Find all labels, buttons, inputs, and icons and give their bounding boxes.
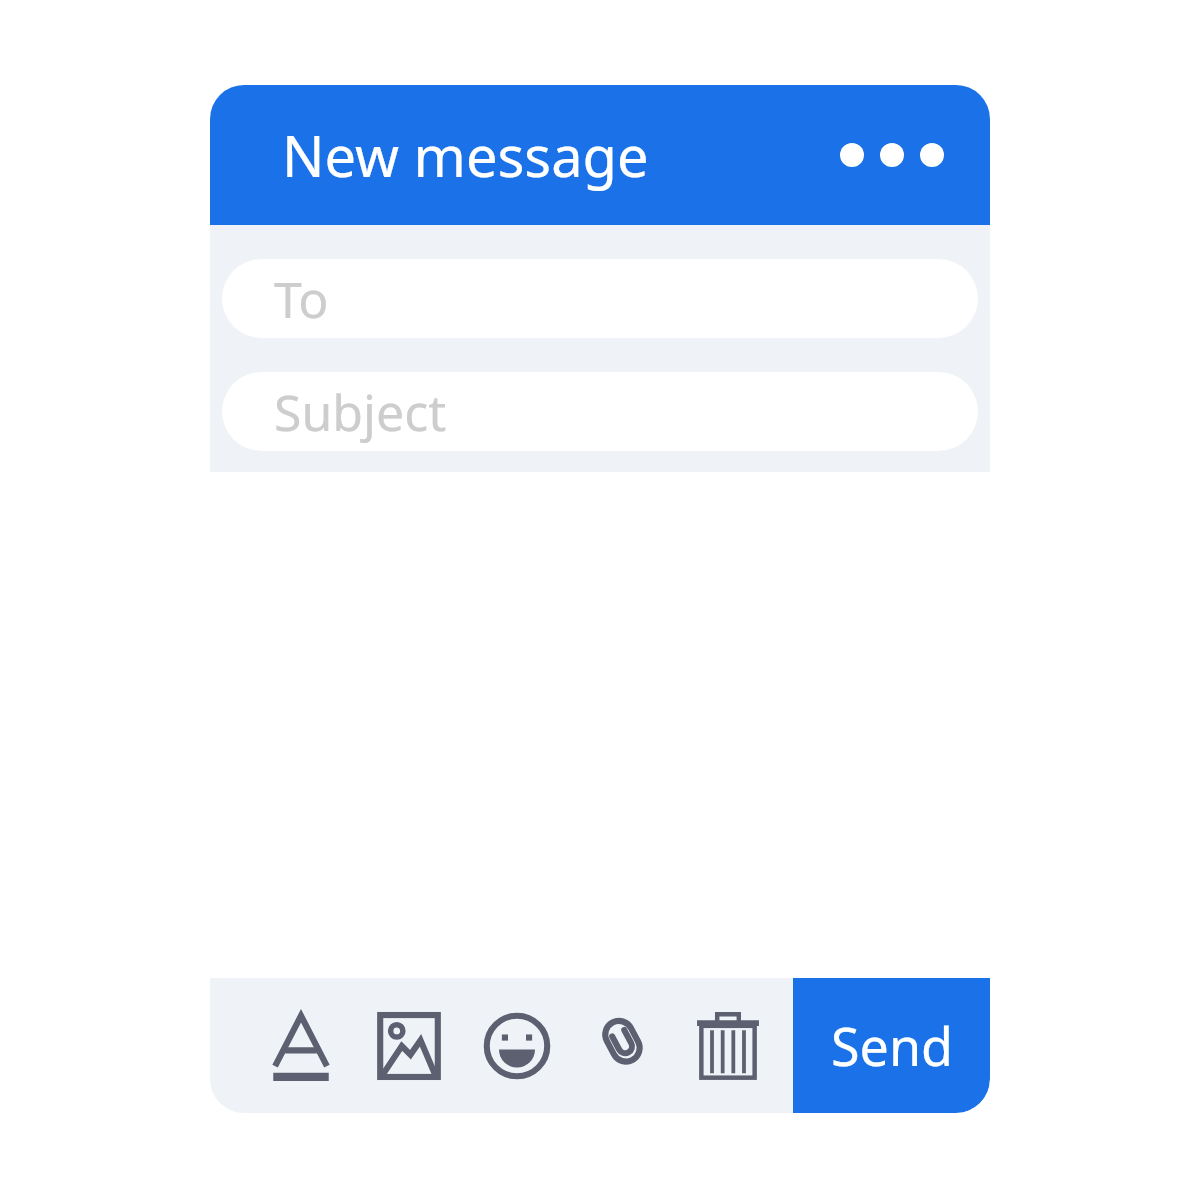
button[interactable]: Subject: [222, 372, 978, 451]
button[interactable]: Insert emoji: [474, 991, 560, 1101]
button[interactable]: Format text: [258, 991, 344, 1101]
staticText: Send: [831, 1010, 953, 1081]
button[interactable]: More options: [824, 115, 960, 195]
button[interactable]: Attach file: [582, 991, 668, 1101]
staticText: To: [274, 265, 329, 333]
button[interactable]: Send: [793, 978, 990, 1113]
staticText: New message: [282, 117, 649, 193]
button[interactable]: Delete draft: [685, 991, 771, 1101]
staticText: Subject: [274, 378, 447, 446]
button[interactable]: To: [222, 259, 978, 338]
button[interactable]: Insert photo: [366, 991, 452, 1101]
